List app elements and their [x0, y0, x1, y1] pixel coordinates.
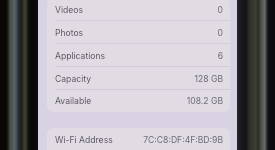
staticText: 6	[217, 51, 223, 61]
staticText: Photos	[55, 28, 84, 38]
staticText: 0	[217, 5, 223, 15]
staticText: Available	[55, 96, 92, 106]
staticText: Capacity	[55, 74, 92, 84]
staticText: 128 GB	[194, 74, 223, 84]
staticText: 0	[217, 28, 223, 38]
staticText: 108.2 GB	[186, 96, 223, 106]
button[interactable]: Capacity	[47, 67, 230, 90]
button[interactable]: Photos	[47, 21, 230, 44]
button[interactable]: Wi-Fi Address	[47, 128, 230, 150]
staticText: Videos	[55, 5, 83, 15]
button[interactable]: Videos	[47, 0, 230, 21]
staticText: Applications	[55, 51, 106, 61]
button[interactable]: Available	[47, 90, 230, 112]
staticText: Wi-Fi Address	[55, 135, 113, 145]
staticText: 7C:C8:DF:4F:BD:9B	[143, 135, 223, 145]
button[interactable]: Applications	[47, 44, 230, 67]
